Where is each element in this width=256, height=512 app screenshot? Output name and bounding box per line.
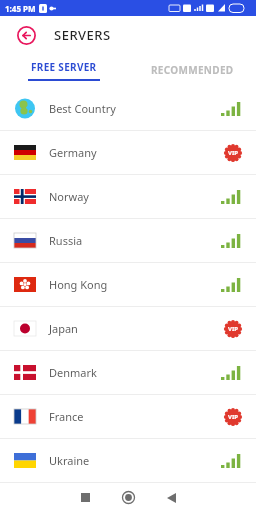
button[interactable] bbox=[112, 483, 144, 512]
button[interactable] bbox=[14, 23, 38, 47]
staticText: RECOMMENDED bbox=[151, 63, 234, 77]
staticText: 1:45 PM bbox=[5, 3, 36, 14]
staticText: Best Country bbox=[49, 101, 116, 116]
button[interactable]: RECOMMENDED bbox=[128, 53, 256, 87]
button[interactable]: Hong Kong bbox=[0, 263, 256, 306]
staticText: Hong Kong bbox=[49, 277, 108, 292]
button[interactable]: Ukraine bbox=[0, 439, 256, 482]
staticText: Russia bbox=[49, 233, 83, 248]
staticText: Japan bbox=[49, 321, 78, 336]
button[interactable]: Best Country bbox=[0, 87, 256, 130]
staticText: VIP bbox=[228, 325, 238, 333]
staticText: FREE SERVER bbox=[31, 60, 97, 74]
button[interactable]: Japan bbox=[0, 307, 256, 350]
button[interactable]: FREE SERVER bbox=[0, 53, 128, 87]
staticText: VIP bbox=[228, 413, 238, 421]
staticText: Norway bbox=[49, 189, 89, 204]
staticText: Denmark bbox=[49, 365, 97, 380]
button[interactable]: France bbox=[0, 395, 256, 438]
staticText: VIP bbox=[228, 149, 238, 157]
button[interactable]: Russia bbox=[0, 219, 256, 262]
button[interactable] bbox=[155, 483, 187, 512]
button[interactable]: Norway bbox=[0, 175, 256, 218]
button[interactable]: Denmark bbox=[0, 351, 256, 394]
staticText: Germany bbox=[49, 145, 97, 160]
button[interactable]: Germany bbox=[0, 131, 256, 174]
staticText: France bbox=[49, 409, 84, 424]
staticText: Ukraine bbox=[49, 453, 90, 468]
button[interactable] bbox=[69, 483, 101, 512]
staticText: SERVERS bbox=[54, 26, 111, 44]
